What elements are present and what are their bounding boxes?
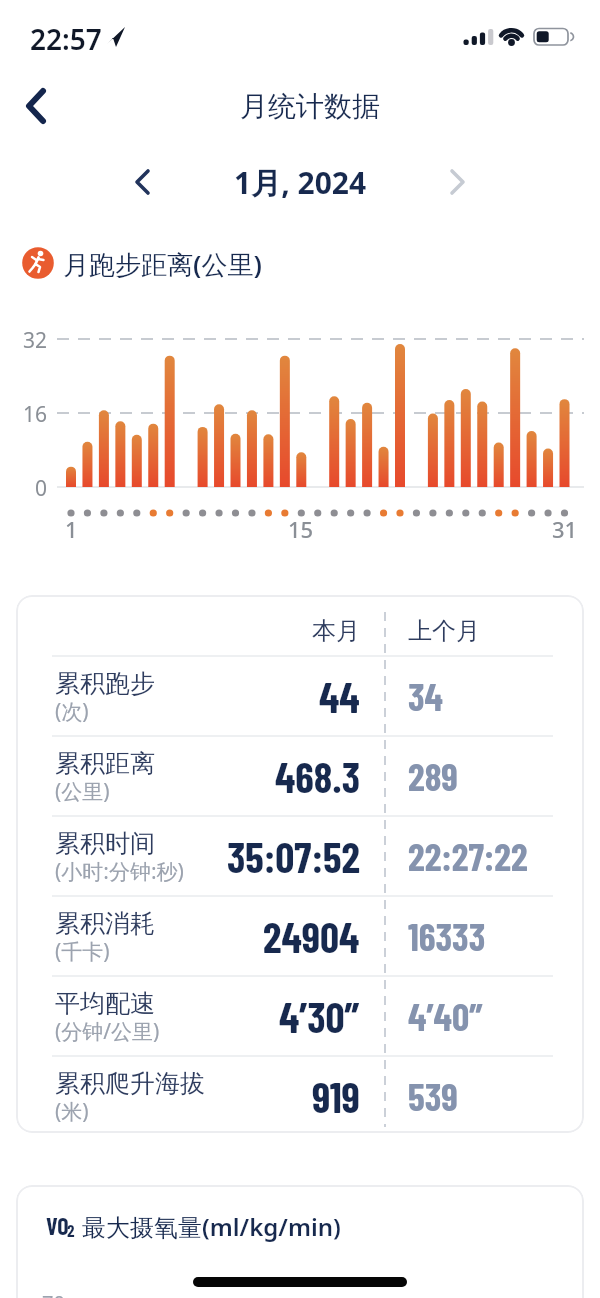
staticText: (次) bbox=[55, 697, 89, 723]
staticText: 31 bbox=[552, 514, 578, 540]
button[interactable] bbox=[16, 736, 584, 816]
button[interactable] bbox=[14, 84, 58, 128]
staticText: 539 bbox=[408, 1073, 458, 1119]
button[interactable] bbox=[16, 1056, 584, 1136]
staticText: (米) bbox=[55, 1097, 89, 1123]
staticText: 0 bbox=[35, 474, 48, 500]
staticText: 月跑步距离(公里) bbox=[63, 246, 262, 278]
staticText: 1 bbox=[65, 514, 78, 540]
button[interactable] bbox=[122, 162, 162, 202]
staticText: 16 bbox=[23, 400, 48, 426]
staticText: 平均配速 bbox=[55, 988, 155, 1018]
staticText: 累积时间 bbox=[55, 828, 155, 858]
staticText: 289 bbox=[408, 753, 458, 799]
staticText: 最大摄氧量(ml/kg/min) bbox=[82, 1210, 341, 1243]
staticText: (分钟/公里) bbox=[55, 1017, 160, 1043]
staticText: 上个月 bbox=[408, 616, 480, 646]
staticText: 22:27:22 bbox=[408, 833, 528, 879]
button[interactable] bbox=[16, 896, 584, 976]
staticText: 累积距离 bbox=[55, 748, 155, 778]
staticText: 本月 bbox=[312, 616, 360, 646]
staticText: 1月, 2024 bbox=[234, 162, 367, 202]
staticText: 34 bbox=[408, 673, 443, 719]
staticText: 22:57 bbox=[30, 20, 102, 50]
button[interactable] bbox=[438, 162, 478, 202]
button[interactable] bbox=[16, 816, 584, 896]
staticText: 4’30” bbox=[279, 991, 360, 1041]
staticText: 16333 bbox=[408, 913, 486, 959]
staticText: 4’40” bbox=[408, 993, 483, 1039]
staticText: 919 bbox=[312, 1071, 360, 1121]
staticText: 35:07:52 bbox=[227, 831, 360, 881]
staticText: (千卡) bbox=[55, 937, 110, 963]
staticText: 2 bbox=[67, 1220, 75, 1240]
staticText: 累积跑步 bbox=[55, 668, 155, 698]
staticText: 月统计数据 bbox=[240, 89, 380, 124]
staticText: 15 bbox=[288, 514, 314, 540]
staticText: 70 bbox=[42, 1289, 65, 1298]
staticText: VO bbox=[46, 1211, 69, 1240]
staticText: (小时:分钟:秒) bbox=[55, 857, 184, 883]
button[interactable] bbox=[16, 1185, 584, 1298]
staticText: (公里) bbox=[55, 777, 110, 803]
staticText: 468.3 bbox=[275, 751, 360, 801]
button[interactable] bbox=[16, 976, 584, 1056]
button[interactable] bbox=[16, 656, 584, 736]
staticText: 累积消耗 bbox=[55, 908, 155, 938]
staticText: 32 bbox=[23, 326, 48, 352]
staticText: 累积爬升海拔 bbox=[55, 1068, 205, 1098]
staticText: 44 bbox=[319, 671, 360, 721]
staticText: 24904 bbox=[263, 911, 360, 961]
